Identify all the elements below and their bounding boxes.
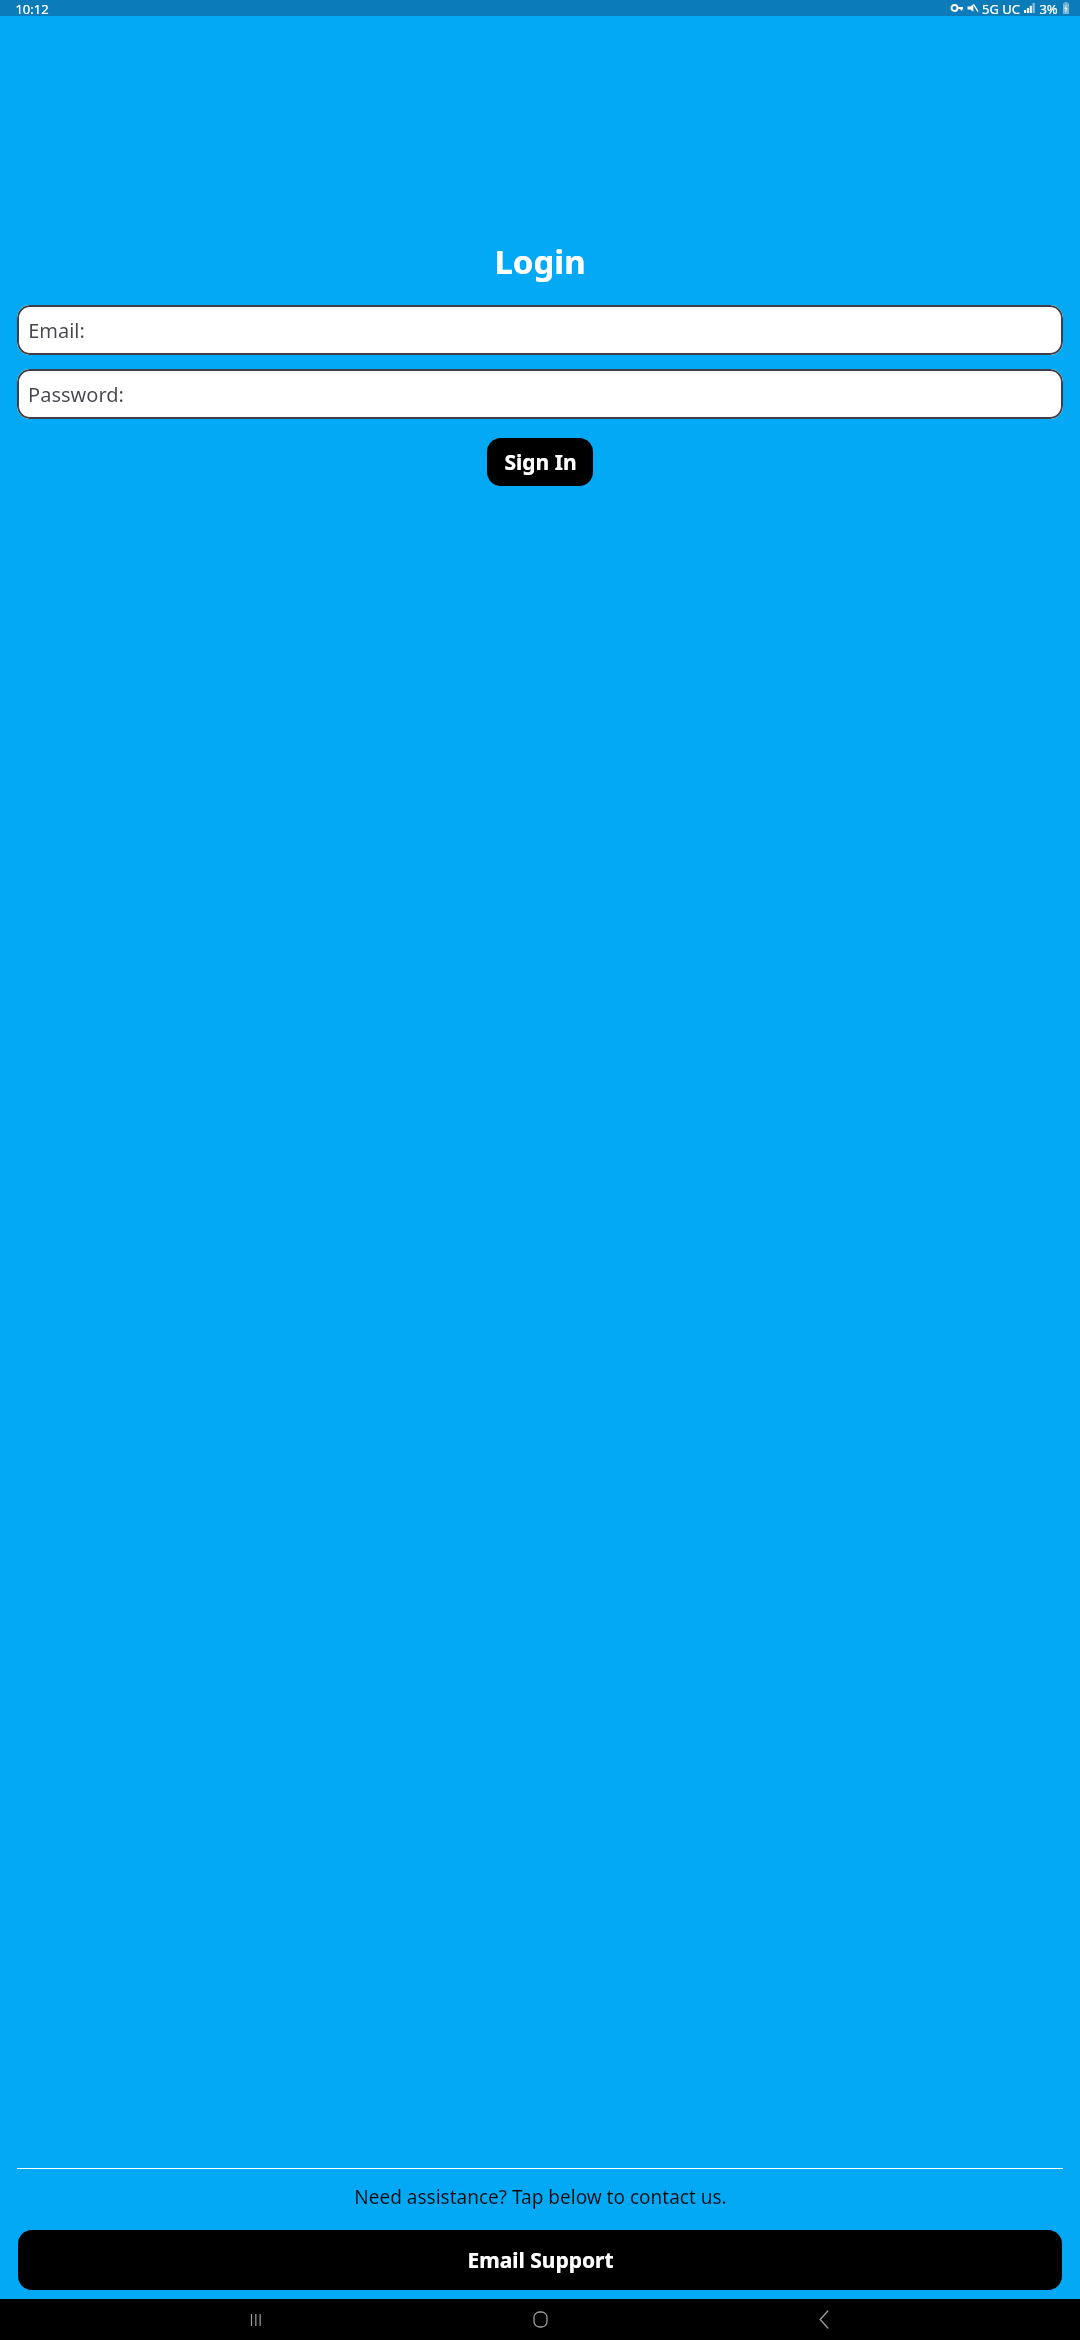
- staticText: Password:: [28, 381, 124, 408]
- staticText: Email Support: [467, 2246, 614, 2275]
- button[interactable]: Recent apps: [228, 2299, 284, 2340]
- button[interactable]: Password:: [17, 369, 1063, 419]
- staticText: Email:: [28, 317, 85, 344]
- staticText: 10:12: [15, 0, 49, 16]
- button[interactable]: Home: [512, 2299, 568, 2340]
- button[interactable]: Email Support: [18, 2230, 1062, 2290]
- button[interactable]: Email:: [17, 305, 1063, 355]
- staticText: 5G UC: [982, 0, 1020, 16]
- staticText: Need assistance? Tap below to contact us…: [354, 2184, 727, 2210]
- staticText: Sign In: [504, 448, 577, 477]
- staticText: 3%: [1039, 0, 1058, 16]
- button[interactable]: Sign In: [487, 438, 593, 486]
- button[interactable]: Back: [796, 2299, 852, 2340]
- staticText: Login: [494, 239, 586, 284]
